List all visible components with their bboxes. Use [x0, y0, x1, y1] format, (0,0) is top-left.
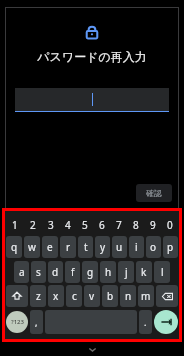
button[interactable]: t [78, 236, 93, 258]
staticText: l [161, 265, 164, 279]
button[interactable]: 5 [76, 216, 93, 233]
staticText: u [116, 240, 123, 254]
button[interactable] [15, 88, 169, 112]
button[interactable]: i [129, 236, 144, 258]
staticText: e [47, 240, 53, 254]
button[interactable]: Shift [6, 285, 28, 307]
button[interactable]: f [65, 261, 80, 283]
staticText: m [141, 289, 151, 303]
staticText: ?123 [11, 318, 24, 326]
staticText: a [19, 265, 25, 279]
button[interactable]: p [163, 236, 178, 258]
button[interactable]: 9 [144, 216, 161, 233]
button[interactable]: k [136, 261, 152, 283]
staticText: n [125, 289, 132, 303]
button[interactable]: 2 [24, 216, 42, 233]
button[interactable]: ?123 [6, 311, 28, 333]
button[interactable]: Next [154, 310, 178, 334]
button[interactable]: o [146, 236, 161, 258]
staticText: k [141, 265, 147, 279]
staticText: f [71, 265, 75, 279]
staticText: 1 [12, 218, 18, 232]
staticText: w [28, 240, 36, 254]
button[interactable]: 7 [110, 216, 127, 233]
button[interactable]: 確認 [136, 184, 172, 202]
button[interactable]: w [24, 236, 40, 258]
staticText: 8 [133, 218, 139, 232]
button[interactable]: v [84, 285, 100, 307]
button[interactable]: Hide keyboard [80, 343, 104, 355]
staticText: 7 [116, 218, 122, 232]
button[interactable]: 6 [93, 216, 110, 233]
staticText: t [84, 240, 88, 254]
staticText: 0 [167, 218, 173, 232]
button[interactable]: u [112, 236, 127, 258]
button[interactable]: 4 [59, 216, 76, 233]
button[interactable]: a [14, 261, 29, 283]
staticText: h [105, 265, 112, 279]
staticText: 5 [82, 218, 88, 232]
staticText: q [11, 240, 18, 254]
button[interactable]: r [60, 236, 76, 258]
staticText: 2 [30, 218, 36, 232]
button[interactable]: s [31, 261, 46, 283]
button[interactable]: j [118, 261, 134, 283]
staticText: 確認 [146, 188, 162, 198]
staticText: x [53, 289, 59, 303]
button[interactable]: , [30, 310, 43, 334]
button[interactable]: b [102, 285, 118, 307]
staticText: v [89, 289, 95, 303]
staticText: 3 [48, 218, 54, 232]
button[interactable]: c [66, 285, 82, 307]
button[interactable]: z [30, 285, 46, 307]
staticText: y [100, 240, 106, 254]
staticText: c [72, 289, 77, 303]
button[interactable]: g [82, 261, 98, 283]
staticText: g [87, 265, 94, 279]
staticText: パスワードの再入力 [37, 49, 147, 64]
button[interactable]: y [95, 236, 110, 258]
button[interactable]: h [100, 261, 116, 283]
button[interactable]: q [6, 236, 22, 258]
button[interactable]: m [138, 285, 154, 307]
button[interactable]: 0 [161, 216, 178, 233]
button[interactable]: 3 [42, 216, 59, 233]
staticText: p [167, 240, 174, 254]
staticText: . [144, 316, 147, 328]
other: Locked [84, 24, 100, 40]
staticText: o [150, 240, 157, 254]
button[interactable]: n [120, 285, 136, 307]
staticText: r [66, 240, 71, 254]
button[interactable]: x [48, 285, 64, 307]
button[interactable]: 8 [127, 216, 144, 233]
button[interactable]: Backspace [156, 285, 178, 307]
staticText: 9 [150, 218, 156, 232]
button[interactable]: 1 [6, 216, 24, 233]
staticText: z [36, 289, 41, 303]
staticText: , [35, 316, 38, 328]
button[interactable]: l [154, 261, 170, 283]
staticText: b [107, 289, 114, 303]
button[interactable]: . [139, 310, 152, 334]
staticText: d [52, 265, 59, 279]
staticText: s [36, 265, 41, 279]
staticText: 6 [99, 218, 105, 232]
staticText: j [125, 265, 128, 279]
staticText: i [135, 240, 138, 254]
staticText: 4 [65, 218, 71, 232]
button[interactable]: d [48, 261, 63, 283]
button[interactable]: e [42, 236, 58, 258]
